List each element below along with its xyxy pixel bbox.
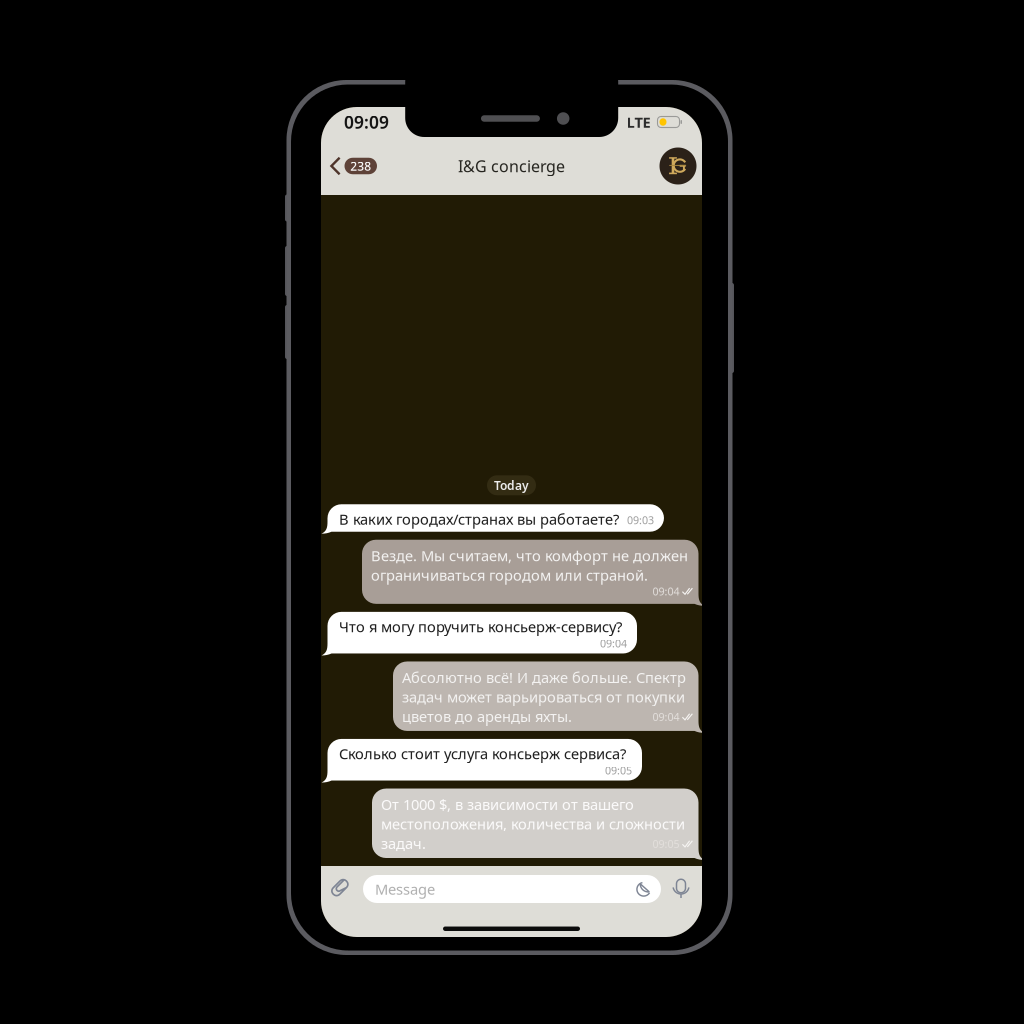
staticText: Message	[375, 879, 435, 899]
staticText: 09:04	[600, 636, 627, 650]
staticText: 238	[350, 158, 371, 174]
staticText: 09:05	[652, 837, 679, 851]
staticText: Везде. Мы считаем, что комфорт не должен…	[371, 546, 688, 585]
staticText: 09:05	[605, 763, 632, 778]
staticText: 09:04	[652, 710, 679, 724]
staticText: 09:09	[344, 110, 389, 133]
staticText: 09:04	[652, 584, 679, 598]
staticText: Today	[494, 477, 529, 493]
staticText: Что я могу поручить консьерж-сервису?	[339, 617, 622, 636]
staticText: Абсолютно всё! И даже больше. Спектр зад…	[402, 667, 686, 726]
button[interactable]: 238	[323, 144, 382, 188]
button[interactable]: I&G concierge profile	[656, 144, 700, 188]
staticText: 09:03	[627, 513, 654, 527]
staticText: В каких городах/странах вы работаете?	[339, 509, 619, 529]
button[interactable]: Record voice message	[670, 871, 692, 907]
staticText: LTE	[626, 112, 650, 132]
staticText: От 1000 $, в зависимости от вашего место…	[381, 795, 685, 853]
staticText: I&G concierge	[458, 155, 565, 177]
staticText: Сколько стоит услуга консьерж сервиса?	[339, 744, 626, 763]
button[interactable]: Attach file	[330, 871, 354, 907]
